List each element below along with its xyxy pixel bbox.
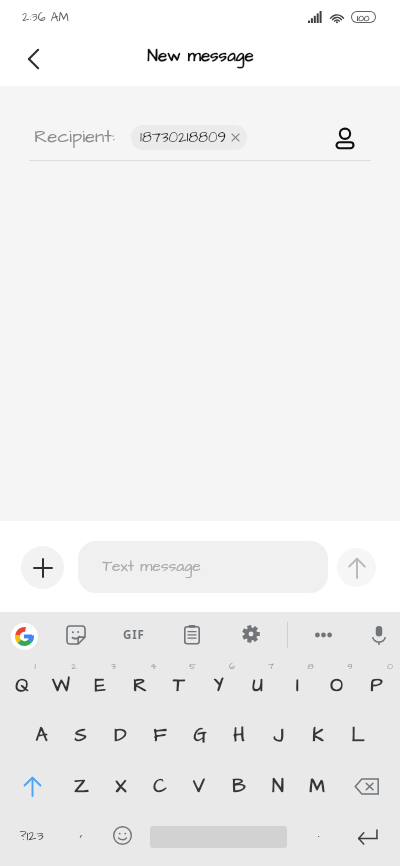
button[interactable]: T bbox=[159, 661, 198, 708]
staticText: 7 bbox=[268, 660, 274, 673]
staticText: , bbox=[80, 821, 83, 843]
button[interactable]: Emoji bbox=[102, 813, 142, 857]
button[interactable]: L bbox=[338, 711, 377, 758]
button[interactable]: Q bbox=[2, 661, 41, 708]
staticText: E bbox=[94, 672, 106, 698]
button[interactable]: H bbox=[219, 711, 258, 758]
staticText: U bbox=[252, 672, 263, 698]
button[interactable]: M bbox=[297, 762, 336, 809]
staticText: O bbox=[330, 672, 343, 698]
button[interactable]: Text message bbox=[78, 541, 328, 593]
button[interactable]: A bbox=[22, 711, 61, 758]
button[interactable]: , bbox=[63, 810, 99, 854]
button[interactable]: Voice input bbox=[362, 618, 396, 652]
button[interactable]: F bbox=[140, 711, 179, 758]
staticText: T bbox=[173, 672, 185, 698]
staticText: V bbox=[193, 773, 205, 799]
button[interactable]: J bbox=[259, 711, 298, 758]
button[interactable]: B bbox=[219, 762, 258, 809]
staticText: 9 bbox=[347, 660, 353, 673]
staticText: P bbox=[370, 672, 383, 698]
button[interactable]: More options bbox=[306, 618, 340, 652]
button[interactable]: Send bbox=[337, 548, 376, 587]
staticText: 0 bbox=[387, 660, 393, 673]
button[interactable]: R bbox=[120, 661, 159, 708]
staticText: Z bbox=[74, 773, 89, 799]
staticText: N bbox=[272, 773, 284, 799]
staticText: Y bbox=[213, 672, 224, 698]
button[interactable]: Enter bbox=[341, 814, 393, 858]
staticText: L bbox=[351, 722, 365, 748]
staticText: H bbox=[233, 722, 245, 748]
button[interactable]: C bbox=[140, 762, 179, 809]
button[interactable]: Google search bbox=[8, 620, 40, 652]
staticText: S bbox=[74, 722, 87, 748]
button[interactable]: Settings bbox=[234, 617, 268, 651]
staticText: J bbox=[273, 722, 284, 748]
staticText: B bbox=[232, 773, 246, 799]
staticText: R bbox=[133, 672, 147, 698]
staticText: 6 bbox=[229, 660, 235, 673]
staticText: Q bbox=[15, 672, 29, 698]
button[interactable]: Add contact bbox=[324, 118, 366, 160]
button[interactable]: Clipboard bbox=[175, 617, 209, 651]
button[interactable]: G bbox=[180, 711, 219, 758]
staticText: 5 bbox=[189, 660, 196, 673]
button[interactable]: ?123 bbox=[4, 813, 58, 857]
staticText: M bbox=[309, 773, 325, 799]
button[interactable]: O bbox=[317, 661, 356, 708]
button[interactable]: S bbox=[61, 711, 100, 758]
button[interactable]: V bbox=[179, 762, 218, 809]
staticText: 4 bbox=[150, 660, 157, 673]
staticText: 3 bbox=[111, 660, 116, 673]
staticText: Recipient: bbox=[34, 124, 115, 150]
staticText: K bbox=[312, 722, 324, 748]
staticText: D bbox=[114, 722, 127, 748]
button[interactable]: N bbox=[258, 762, 297, 809]
staticText: Text message bbox=[102, 556, 201, 578]
staticText: 100 bbox=[357, 12, 370, 22]
button[interactable]: Y bbox=[199, 661, 238, 708]
button[interactable]: GIF bbox=[114, 620, 154, 650]
staticText: G bbox=[193, 722, 207, 748]
staticText: New message bbox=[147, 44, 254, 68]
button[interactable]: Backspace bbox=[341, 763, 393, 810]
staticText: 18730218809 bbox=[140, 127, 226, 148]
staticText: W bbox=[52, 672, 70, 698]
button[interactable]: Shift bbox=[8, 763, 56, 810]
button[interactable]: E bbox=[80, 661, 119, 708]
staticText: F bbox=[153, 722, 167, 748]
staticText: 1 bbox=[34, 660, 36, 673]
button[interactable]: K bbox=[298, 711, 337, 758]
staticText: A bbox=[35, 722, 48, 748]
button[interactable]: Attach bbox=[21, 546, 64, 589]
button[interactable]: P bbox=[357, 661, 396, 708]
button[interactable]: U bbox=[238, 661, 277, 708]
button[interactable]: X bbox=[101, 762, 140, 809]
staticText: GIF bbox=[123, 627, 145, 643]
button[interactable]: D bbox=[101, 711, 140, 758]
staticText: 2 bbox=[71, 660, 77, 673]
staticText: X bbox=[115, 773, 127, 799]
button[interactable]: Stickers bbox=[59, 618, 93, 652]
button[interactable]: 18730218809 bbox=[131, 125, 247, 150]
staticText: C bbox=[153, 773, 167, 799]
button[interactable]: Back bbox=[12, 38, 54, 80]
staticText: . bbox=[317, 821, 320, 843]
staticText: 8 bbox=[307, 660, 314, 673]
button[interactable]: W bbox=[41, 661, 80, 708]
staticText: 2:36 AM bbox=[22, 9, 69, 26]
staticText: I bbox=[296, 672, 299, 698]
button[interactable]: . bbox=[300, 810, 336, 854]
button[interactable]: Z bbox=[62, 762, 101, 809]
staticText: ?123 bbox=[19, 826, 44, 845]
button[interactable]: I bbox=[278, 661, 317, 708]
